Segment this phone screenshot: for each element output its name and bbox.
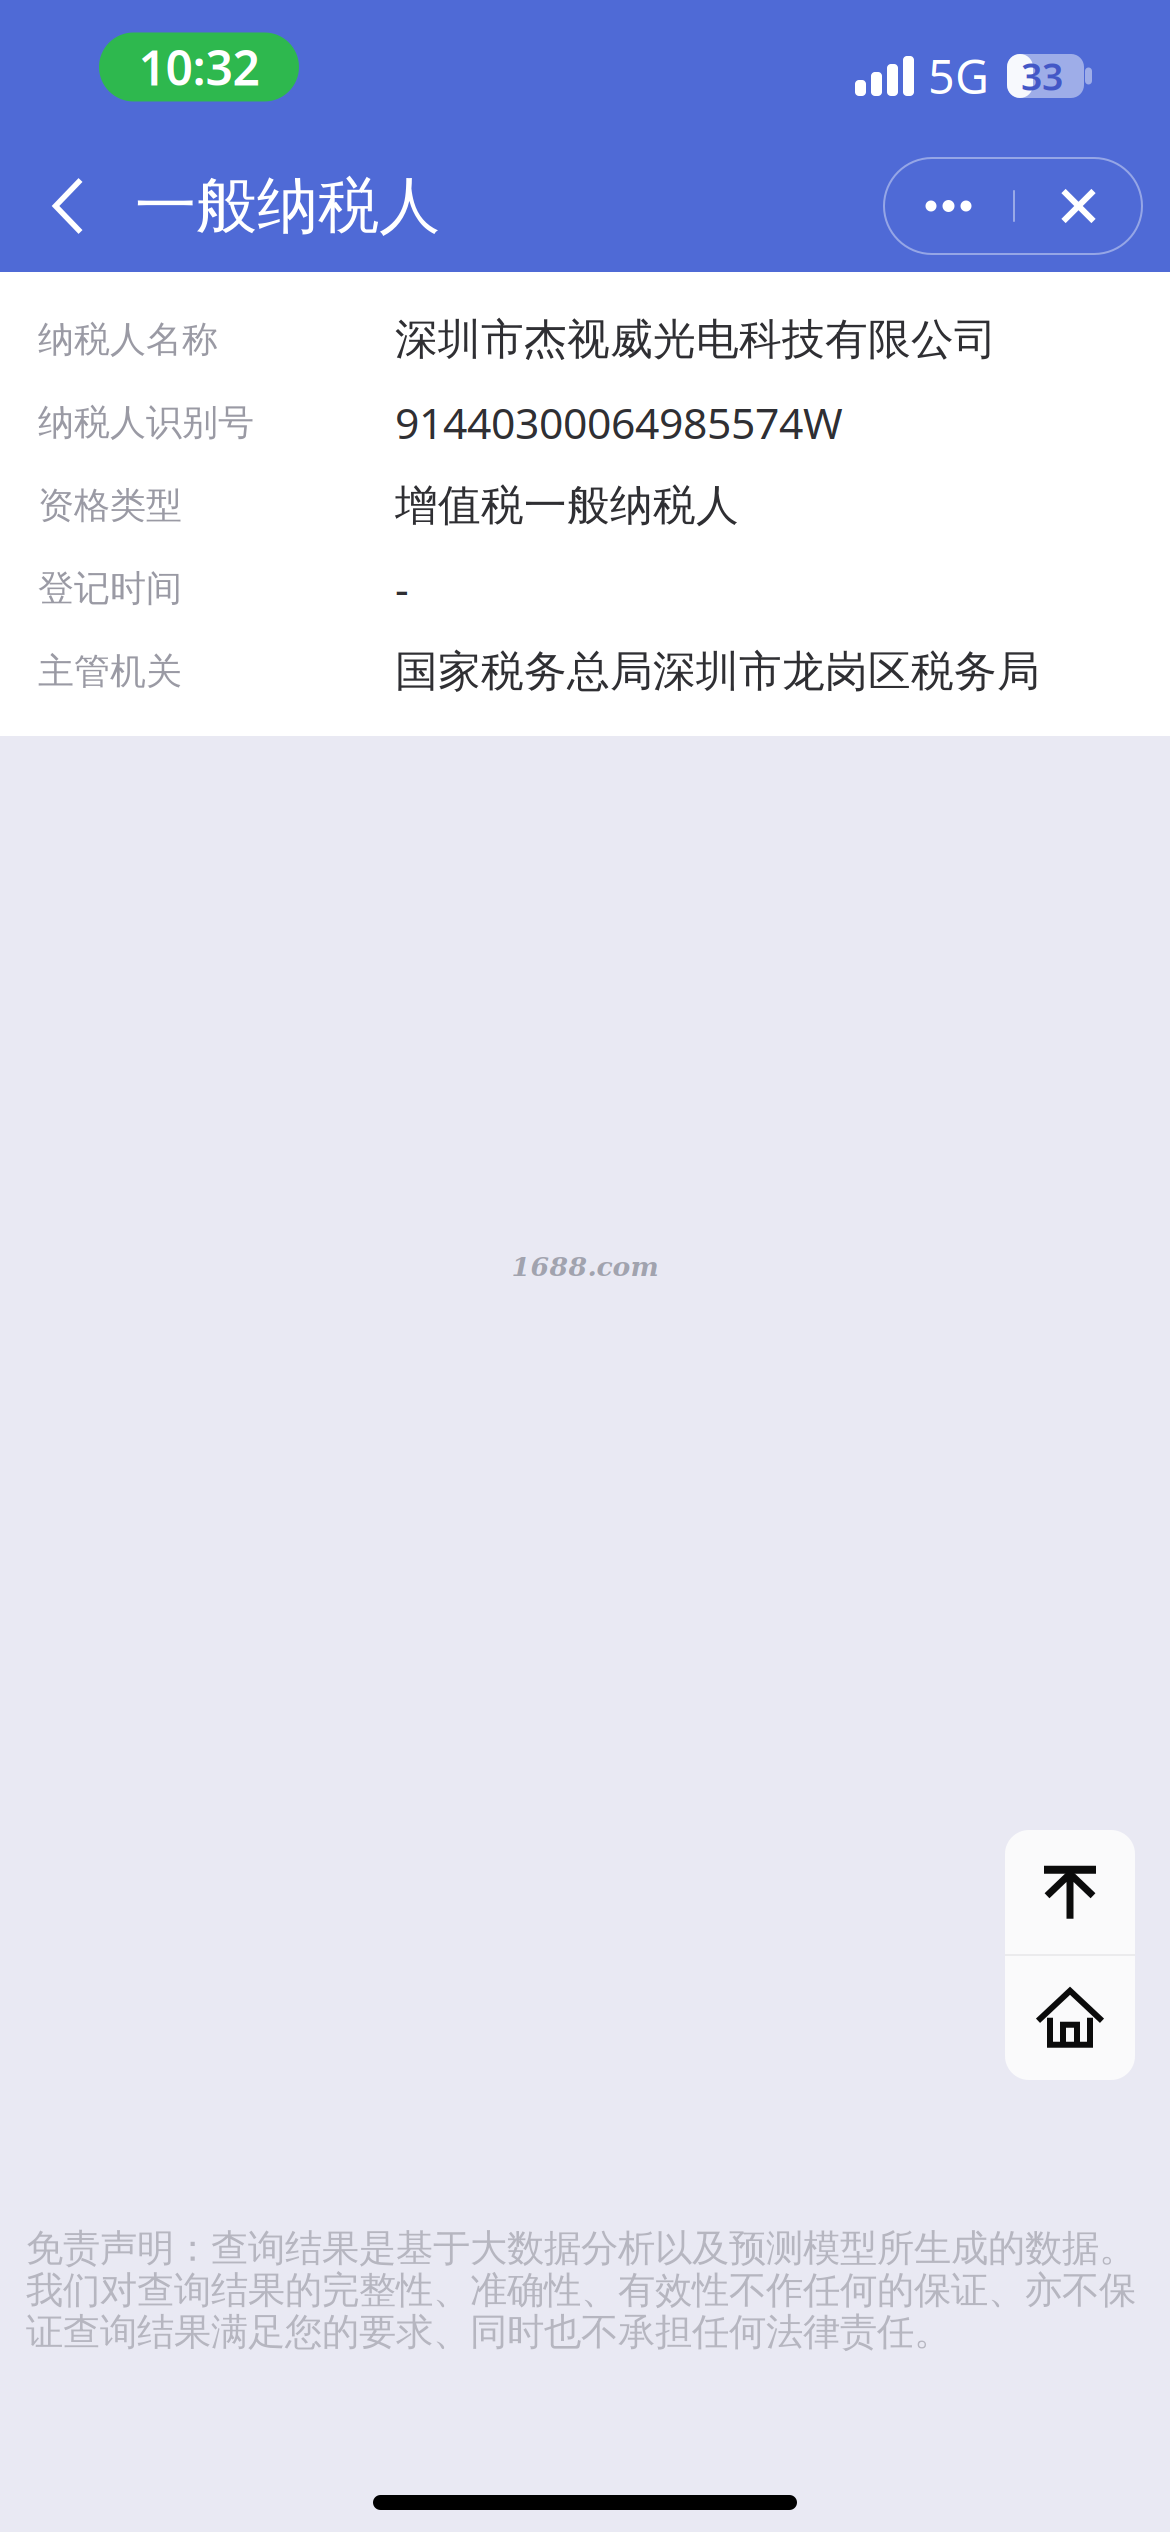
- staticText: 免责声明：查询结果是基于大数据分析以及预测模型所生成的数据。我们对查询结果的完整…: [26, 2225, 1136, 2355]
- button[interactable]: More options: [884, 158, 1013, 254]
- staticText: 国家税务总局深圳市龙岗区税务局: [395, 645, 1040, 698]
- staticText: 纳税人名称: [38, 317, 218, 362]
- button[interactable]: Close: [1015, 158, 1142, 254]
- staticText: 深圳市杰视威光电科技有限公司: [395, 313, 997, 366]
- button[interactable]: Scroll to top: [1005, 1830, 1135, 1954]
- staticText: 纳税人识别号: [38, 400, 254, 445]
- staticText: 登记时间: [38, 566, 182, 611]
- button[interactable]: Home: [1005, 1956, 1135, 2080]
- button[interactable]: Back: [26, 156, 110, 256]
- staticText: 91440300064985574W: [395, 394, 843, 451]
- staticText: 一般纳税人: [135, 168, 440, 244]
- staticText: 5G: [928, 45, 989, 107]
- staticText: 1688.com: [511, 1251, 658, 1282]
- staticText: 资格类型: [38, 483, 182, 528]
- staticText: 主管机关: [38, 649, 182, 694]
- staticText: 增值税一般纳税人: [395, 479, 739, 532]
- staticText: 10:32: [138, 35, 259, 99]
- staticText: -: [395, 560, 409, 617]
- staticText: 33: [1021, 51, 1063, 101]
